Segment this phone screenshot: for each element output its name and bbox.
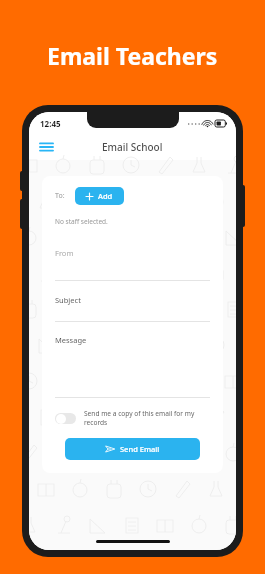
button[interactable]: Menu [35,136,57,158]
staticText: Email School [102,140,163,154]
button[interactable]: Send Email [65,438,200,460]
staticText: Add [98,191,113,201]
staticText: 12:45 [40,118,61,129]
staticText: To: [55,191,65,201]
button[interactable]: Send me a copy of this email for my reco… [55,409,210,427]
staticText: Send me a copy of this email for my reco… [84,409,210,427]
staticText: Subject [55,295,81,305]
staticText: Email Teachers [47,40,218,71]
staticText: Message [55,335,87,345]
staticText: Send Email [120,444,160,454]
button[interactable]: Add [75,187,124,205]
staticText: From [55,248,74,258]
staticText: No staff selected. [55,217,108,226]
